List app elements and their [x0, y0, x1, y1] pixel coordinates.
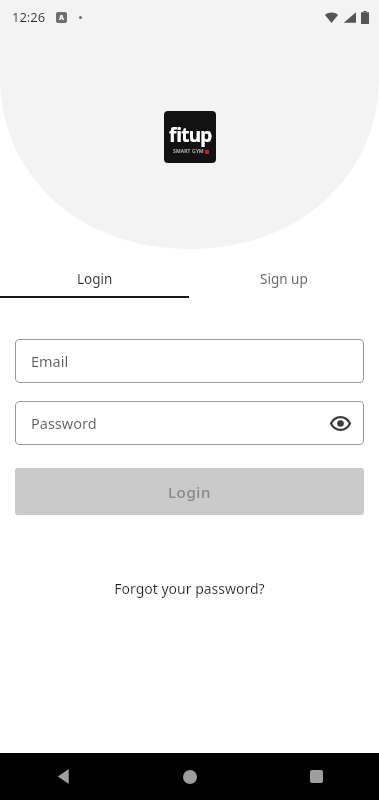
staticText: 12:26 — [12, 8, 46, 26]
button[interactable]: Sign up — [189, 262, 379, 298]
staticText: Email — [31, 351, 69, 371]
button[interactable]: Home — [127, 753, 253, 800]
button[interactable]: Login — [0, 262, 189, 298]
staticText: Forgot your password? — [114, 579, 265, 598]
button[interactable]: Forgot your password? — [102, 573, 277, 604]
staticText: A — [59, 13, 64, 23]
button[interactable]: Login — [15, 468, 364, 515]
staticText: Password — [31, 413, 97, 433]
staticText: fitup — [169, 122, 212, 148]
staticText: Sign up — [260, 270, 308, 288]
button[interactable]: Back — [0, 753, 127, 800]
button[interactable]: Email — [15, 339, 364, 383]
button[interactable]: Recent apps — [253, 753, 379, 800]
staticText: Login — [77, 270, 113, 288]
button[interactable]: Password — [15, 401, 364, 445]
staticText: Login — [168, 482, 211, 502]
staticText: SMART GYM — [173, 148, 204, 155]
button[interactable]: Show password — [327, 410, 353, 436]
